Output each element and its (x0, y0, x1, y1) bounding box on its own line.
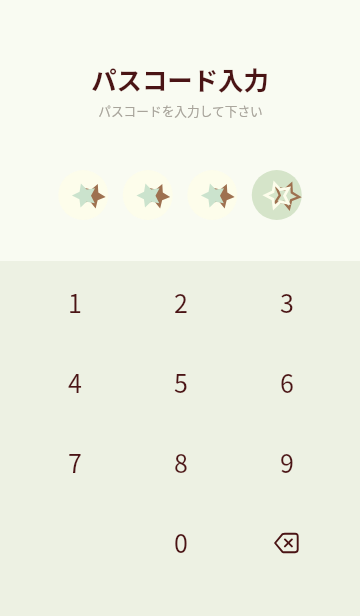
button[interactable]: 6 (234, 342, 340, 422)
staticText: パスコードを入力して下さい (98, 101, 263, 119)
button[interactable]: 1 (22, 262, 128, 342)
staticText: 7 (68, 444, 82, 480)
button[interactable]: 5 (128, 342, 234, 422)
staticText: 9 (280, 444, 294, 480)
staticText: 2 (174, 284, 188, 320)
button[interactable]: 7 (22, 422, 128, 502)
button[interactable]: 0 (128, 502, 234, 582)
staticText: 1 (68, 284, 82, 320)
staticText: パスコード入力 (91, 61, 269, 98)
button[interactable]: 2 (128, 262, 234, 342)
staticText: 4 (68, 364, 82, 400)
button[interactable]: 4 (22, 342, 128, 422)
button[interactable]: 9 (234, 422, 340, 502)
staticText: 3 (280, 284, 294, 320)
staticText: 0 (174, 524, 188, 560)
button[interactable]: 8 (128, 422, 234, 502)
staticText: 6 (280, 364, 294, 400)
staticText: 8 (174, 444, 188, 480)
staticText: 5 (174, 364, 188, 400)
button[interactable]: Delete (234, 502, 340, 582)
button[interactable]: 3 (234, 262, 340, 342)
